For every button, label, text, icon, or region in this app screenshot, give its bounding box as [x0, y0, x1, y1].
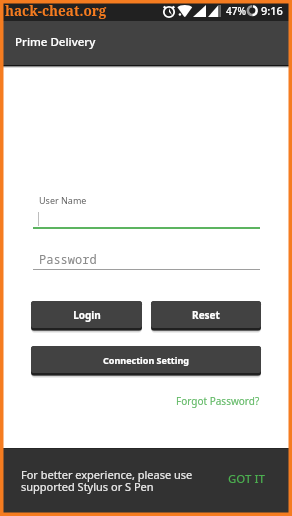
button[interactable]: Prime Delivery	[0, 21, 292, 65]
staticText: Reset	[192, 308, 220, 322]
staticText: Password	[39, 251, 97, 267]
button[interactable]: Connection Setting	[31, 346, 261, 373]
staticText: Connection Setting	[103, 354, 189, 366]
staticText: hack-cheat.org	[5, 2, 107, 20]
staticText: 47%	[226, 4, 246, 18]
staticText: 9:16	[261, 3, 283, 18]
staticText: Login	[73, 308, 101, 322]
button[interactable]: Login	[31, 301, 142, 328]
staticText: User Name	[39, 194, 87, 206]
staticText: GOT IT	[228, 471, 266, 487]
button[interactable]: GOT IT	[228, 471, 266, 487]
staticText: Prime Delivery	[15, 34, 96, 50]
staticText: For better experience, please use suppor…	[21, 467, 193, 494]
button[interactable]: Reset	[151, 301, 261, 328]
button[interactable]: Forgot Password?	[176, 394, 260, 408]
